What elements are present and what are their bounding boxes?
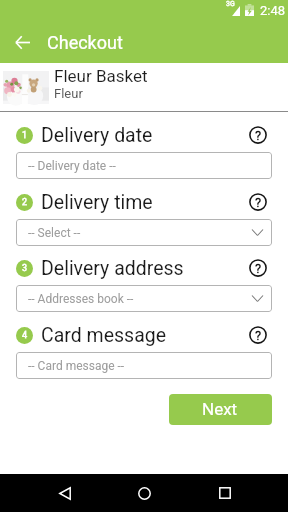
button[interactable]: Fleur Basket [0, 63, 288, 111]
staticText: ? [255, 128, 262, 143]
staticText: 2 [22, 197, 28, 208]
staticText: Checkout [47, 32, 123, 53]
button[interactable]: -- Addresses book -- [16, 285, 272, 312]
staticText: Next [202, 399, 238, 419]
button[interactable]: Next [169, 394, 272, 425]
button[interactable]: Help about Delivery time [248, 192, 268, 212]
button[interactable]: Help about Delivery date [248, 125, 268, 145]
button[interactable]: Back [4, 24, 40, 60]
staticText: -- Addresses book -- [28, 292, 134, 306]
button[interactable]: Recents [205, 474, 245, 512]
button[interactable]: Home [124, 474, 164, 512]
staticText: 2:48 [260, 3, 286, 18]
button[interactable]: -- Select -- [16, 219, 272, 246]
staticText: Fleur Basket [54, 66, 148, 86]
staticText: Delivery address [41, 257, 184, 279]
staticText: -- Select -- [28, 226, 81, 240]
button[interactable]: Help about Delivery address [248, 258, 268, 278]
staticText: -- Delivery date -- [28, 159, 116, 173]
button[interactable]: -- Card message -- [16, 352, 272, 379]
staticText: Card message [41, 324, 167, 346]
button[interactable]: -- Delivery date -- [16, 152, 272, 179]
staticText: Delivery date [41, 124, 153, 146]
staticText: 4 [22, 330, 28, 341]
staticText: -- Card message -- [28, 359, 125, 373]
staticText: ? [255, 195, 262, 210]
staticText: 1 [22, 130, 28, 141]
button[interactable]: Back [45, 474, 85, 512]
staticText: Delivery time [41, 191, 153, 213]
staticText: ? [255, 261, 262, 276]
button[interactable]: Help about Card message [248, 325, 268, 345]
staticText: Fleur [54, 86, 83, 101]
staticText: 3G [226, 0, 235, 8]
staticText: 3 [22, 263, 28, 274]
staticText: ? [255, 328, 262, 343]
